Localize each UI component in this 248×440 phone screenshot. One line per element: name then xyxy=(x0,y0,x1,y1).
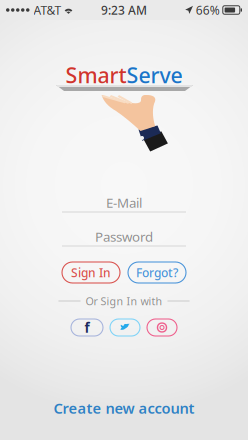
staticText: E-Mail xyxy=(106,194,142,211)
staticText: Sign In xyxy=(71,264,111,280)
staticText: 9:23 AM xyxy=(101,2,147,18)
staticText: Password xyxy=(95,228,153,245)
button[interactable]: Forgot? xyxy=(128,262,186,283)
button[interactable]: Sign in with Twitter xyxy=(110,319,140,336)
staticText: f xyxy=(84,319,89,336)
staticText: AT&T xyxy=(33,2,61,18)
button[interactable]: Create new account xyxy=(0,398,248,418)
staticText: 66% xyxy=(196,2,220,18)
button[interactable]: Sign in with Instagram xyxy=(147,319,177,336)
staticText: Forgot? xyxy=(136,264,178,280)
staticText: Serve xyxy=(126,61,182,89)
staticText: Create new account xyxy=(53,398,194,418)
staticText: Or Sign In with xyxy=(85,294,162,308)
button[interactable]: Sign in with Facebook xyxy=(71,319,103,336)
button[interactable]: Sign In xyxy=(62,262,120,283)
staticText: Smart xyxy=(65,61,126,89)
